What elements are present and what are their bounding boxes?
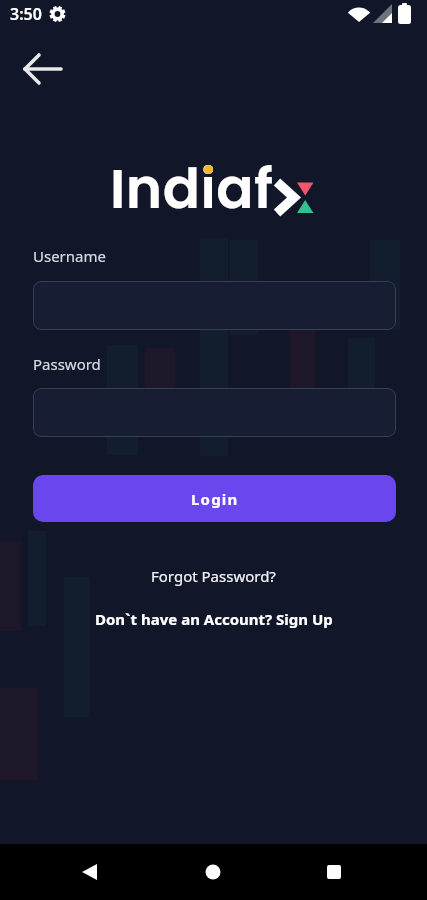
button[interactable] — [33, 281, 396, 330]
button[interactable]: Login — [33, 475, 396, 522]
button[interactable] — [33, 388, 396, 437]
button[interactable]: Don`t have an Account? Sign Up — [95, 609, 333, 629]
staticText: Don`t have an Account? Sign Up — [95, 609, 333, 629]
staticText: Forgot Password? — [151, 566, 276, 586]
button[interactable] — [15, 48, 71, 104]
staticText: Login — [191, 489, 239, 509]
button[interactable] — [314, 860, 354, 884]
button[interactable] — [193, 860, 233, 884]
staticText: 3:50 — [10, 3, 42, 25]
button[interactable]: Forgot Password? — [151, 566, 276, 586]
button[interactable] — [70, 860, 110, 884]
staticText: Username — [33, 246, 106, 266]
staticText: Password — [33, 354, 101, 374]
staticText: Indiaf — [110, 150, 274, 227]
